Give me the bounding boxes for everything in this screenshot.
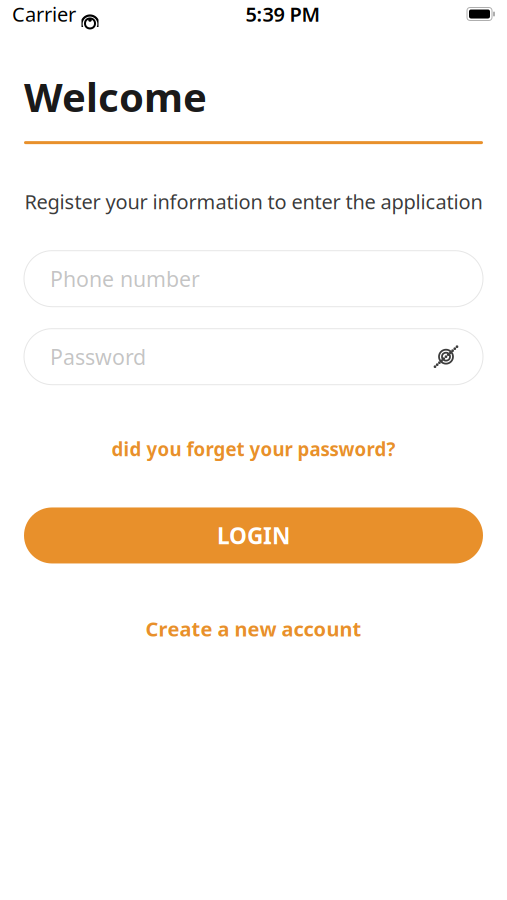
staticText: LOGIN (217, 520, 290, 550)
button[interactable]: Show password (425, 342, 459, 372)
button[interactable]: did you forget your password? (0, 431, 507, 467)
staticText: Carrier (12, 1, 76, 27)
staticText: Create a new account (145, 615, 361, 642)
staticText: Phone number (50, 264, 200, 293)
staticText: 5:39 PM (245, 1, 320, 27)
staticText: Register your information to enter the a… (24, 188, 482, 215)
staticText: Welcome (24, 70, 207, 123)
button[interactable]: LOGIN (24, 507, 483, 563)
staticText: Password (50, 342, 146, 371)
button[interactable]: Create a new account (0, 609, 507, 648)
staticText: did you forget your password? (111, 437, 395, 461)
